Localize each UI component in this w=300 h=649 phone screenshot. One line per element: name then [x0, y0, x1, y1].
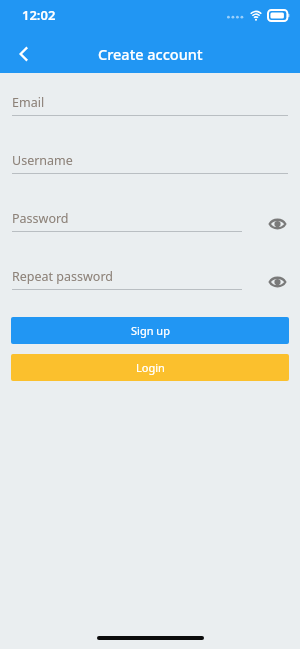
staticText: Email: [12, 94, 45, 111]
button[interactable]: Toggle password visibility: [262, 267, 292, 297]
staticText: Password: [12, 210, 69, 227]
staticText: Create account: [98, 44, 203, 64]
staticText: Login: [136, 360, 165, 375]
staticText: 12:02: [22, 6, 56, 24]
button[interactable]: Email: [0, 93, 300, 131]
button[interactable]: Login: [11, 354, 289, 381]
button[interactable]: Back: [6, 36, 42, 72]
staticText: Repeat password: [12, 268, 114, 285]
button[interactable]: Toggle password visibility: [262, 209, 292, 239]
button[interactable]: Sign up: [11, 317, 289, 344]
button[interactable]: Repeat password: [0, 267, 300, 305]
staticText: Username: [12, 152, 73, 169]
staticText: Sign up: [131, 323, 170, 338]
button[interactable]: Username: [0, 151, 300, 189]
button[interactable]: Password: [0, 209, 300, 247]
